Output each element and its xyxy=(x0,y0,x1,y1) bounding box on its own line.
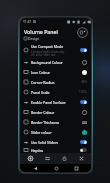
staticText: Panel Scale xyxy=(31,90,50,95)
button[interactable]: Border Thickness xyxy=(20,117,91,127)
button[interactable]: Enable Panel Surface toggle xyxy=(80,100,87,104)
staticText: Icon Colour xyxy=(31,70,51,75)
button[interactable]: Border Colour xyxy=(20,107,91,117)
button[interactable]: Slider colour xyxy=(20,127,91,137)
button[interactable]: Sliders xyxy=(40,153,54,164)
staticText: Haptics xyxy=(31,148,44,153)
staticText: Use Solid Sliders xyxy=(31,140,59,145)
staticText: 11:37 xyxy=(23,20,32,24)
staticText: Border Thickness xyxy=(31,120,60,125)
button[interactable]: Preview volume panel xyxy=(77,27,88,38)
button[interactable]: Design xyxy=(23,153,37,164)
button[interactable]: Haptics toggle xyxy=(80,148,87,152)
staticText: Use Compact Mode xyxy=(31,44,64,49)
button[interactable]: Use Compact Mode toggle xyxy=(80,48,87,52)
staticText: Background Colour xyxy=(31,60,63,65)
button[interactable]: Behaviour xyxy=(57,153,71,164)
staticText: Compact layout shows only the active sli… xyxy=(31,50,65,56)
button[interactable]: Use Solid Sliders toggle xyxy=(80,140,87,144)
button[interactable]: Panel Scale xyxy=(20,87,91,97)
button[interactable]: Home xyxy=(50,164,62,172)
button[interactable]: More xyxy=(74,153,88,164)
staticText: Enable Panel Surface xyxy=(31,100,66,105)
staticText: 100% xyxy=(79,90,87,94)
staticText: Corner Radius xyxy=(31,80,55,85)
staticText: Slider colour xyxy=(31,130,52,135)
button[interactable]: Recents xyxy=(70,164,82,172)
staticText: 38% xyxy=(81,80,87,84)
staticText: Volume Panel xyxy=(24,28,58,35)
button[interactable]: Use Solid Sliders xyxy=(20,137,91,147)
button[interactable]: Use Compact Mode xyxy=(20,42,91,57)
button[interactable]: Background Colour xyxy=(20,57,91,67)
button[interactable]: Icon Colour xyxy=(20,67,91,77)
button[interactable]: Haptics xyxy=(20,147,91,153)
staticText: Border Colour xyxy=(31,110,55,115)
button[interactable]: Enable Panel Surface xyxy=(20,97,91,107)
button[interactable]: Back xyxy=(29,164,41,172)
staticText: Design xyxy=(28,36,40,41)
button[interactable]: Corner Radius xyxy=(20,77,91,87)
